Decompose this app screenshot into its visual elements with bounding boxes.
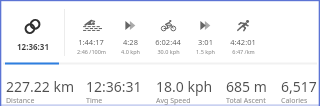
button[interactable]: Swim split [72, 20, 110, 55]
staticText: 12:36:31 [86, 77, 142, 96]
staticText: 3:01 [198, 37, 213, 47]
staticText: Avg Speed [156, 96, 191, 106]
button[interactable]: Transition one [111, 20, 149, 55]
staticText: Distance [6, 96, 35, 106]
button[interactable]: Transition two [186, 20, 224, 55]
staticText: Time [86, 96, 103, 106]
staticText: Calories [281, 96, 308, 106]
button[interactable]: Total multisport time [14, 19, 51, 52]
staticText: Total Ascent [226, 96, 266, 106]
staticText: 1:44:17 [78, 37, 104, 47]
staticText: 6:02:44 [155, 37, 181, 47]
staticText: 227.22 km [6, 77, 74, 96]
staticText: 18.0 kph [156, 77, 213, 96]
staticText: 2:46 /100m [77, 48, 106, 55]
staticText: 685 m [226, 77, 267, 96]
button[interactable]: Bike split [149, 20, 187, 55]
staticText: 4:42:01 [230, 37, 256, 47]
staticText: 4.0 kph [121, 48, 140, 55]
button[interactable]: Run split [224, 20, 262, 55]
staticText: 6:47 /km [232, 48, 255, 55]
staticText: 30.0 kph [157, 48, 180, 55]
staticText: 6,517 [281, 77, 317, 96]
staticText: 1.5 kph [196, 48, 215, 55]
staticText: 12:36:31 [17, 41, 49, 52]
staticText: 4:28 [123, 37, 138, 47]
